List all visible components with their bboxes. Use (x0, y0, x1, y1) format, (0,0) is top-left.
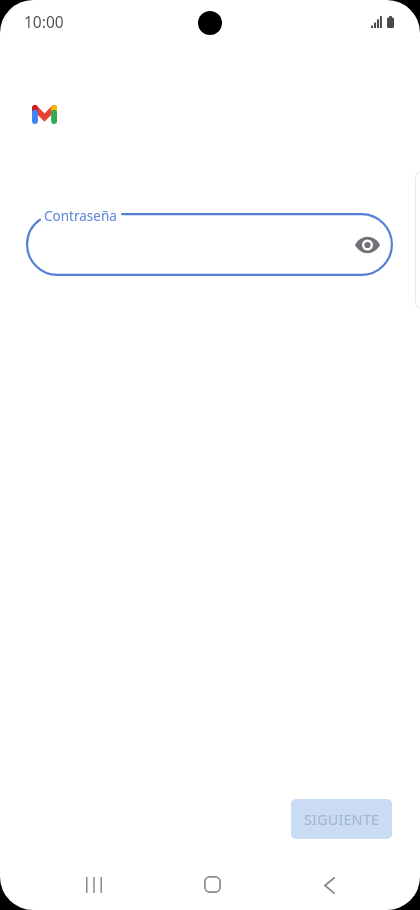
button[interactable]: Inicio (184, 856, 240, 910)
button[interactable]: SIGUIENTE (291, 799, 392, 839)
staticText: 10:00 (24, 11, 64, 32)
staticText: Contraseña (44, 207, 117, 225)
button[interactable]: Recientes (66, 857, 122, 910)
button[interactable]: Mostrar contraseña (348, 226, 386, 264)
button[interactable]: Contraseña (26, 213, 393, 276)
staticText: SIGUIENTE (304, 809, 380, 829)
button[interactable]: Atrás (301, 857, 357, 910)
